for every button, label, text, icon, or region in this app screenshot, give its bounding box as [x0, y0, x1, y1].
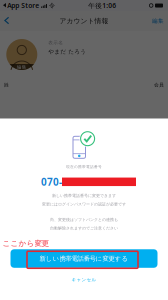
staticText: 姓 — [4, 82, 9, 88]
staticText: 午後1:06 — [88, 1, 116, 10]
staticText: 現在の携帯電話番号 — [66, 164, 102, 169]
staticText: 表示名 — [48, 40, 63, 46]
staticText: やまだ たろう — [48, 48, 86, 55]
staticText: 編集 — [17, 64, 27, 70]
staticText: 新しい携帯電話番号に変更できます — [52, 193, 116, 198]
staticText: キャンセル — [71, 277, 96, 283]
staticText: 尚、変更後はソフトバンクとの連携も — [50, 217, 118, 222]
button[interactable]: キャンセル — [0, 275, 168, 285]
staticText: 新しい携帯電話番号に変更する — [39, 254, 128, 263]
staticText: アカウント情報 — [59, 17, 108, 25]
button[interactable]: 編集 — [152, 17, 164, 25]
button[interactable]: 新しい携帯電話番号に変更する — [10, 249, 157, 268]
staticText: App Store — [7, 1, 39, 10]
button[interactable]: Back — [4, 16, 12, 25]
staticText: 自動解除されますのでご注意ください — [50, 226, 118, 231]
staticText: 令 — [49, 2, 55, 9]
staticText: 070- — [41, 175, 62, 189]
staticText: 編集 — [152, 17, 164, 25]
staticText: 変更にはログインパスワードの認証が必要です — [42, 202, 126, 207]
staticText: 会員 — [154, 82, 164, 88]
staticText: ここから変更 — [2, 239, 48, 248]
